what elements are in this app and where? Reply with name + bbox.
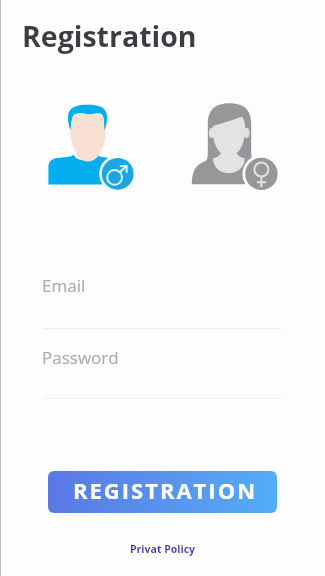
staticText: Registration	[22, 17, 197, 56]
button[interactable]: Select female	[188, 100, 282, 192]
button[interactable]: REGISTRATION	[48, 471, 277, 513]
button[interactable]: Privat Policy	[130, 542, 196, 556]
staticText: REGISTRATION	[73, 475, 258, 505]
staticText: Password	[42, 346, 119, 369]
button[interactable]: Select male	[46, 102, 136, 188]
staticText: Email	[42, 274, 86, 297]
